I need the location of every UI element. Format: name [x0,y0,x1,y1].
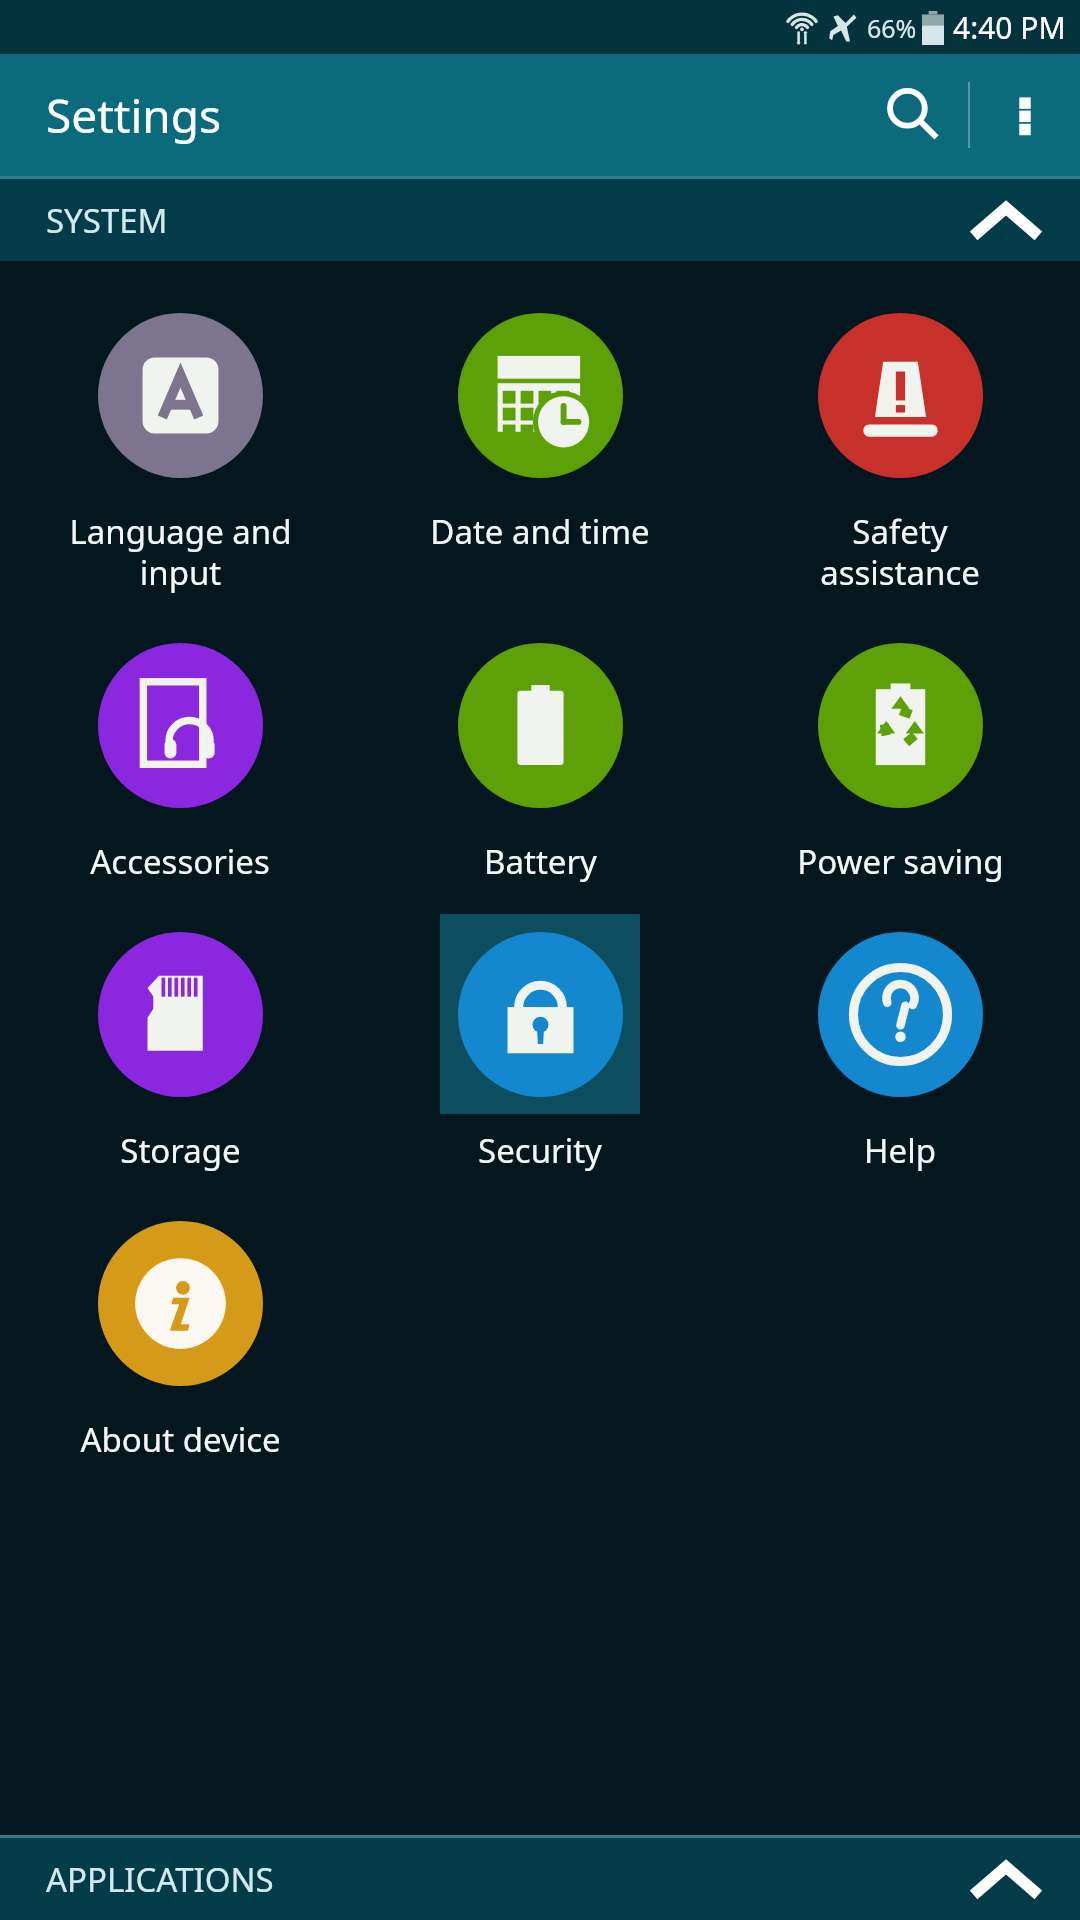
staticText: APPLICATIONS [46,1857,274,1902]
staticText: Date and time [430,509,650,554]
staticText: Help [864,1128,936,1173]
staticText: Storage [120,1128,241,1173]
staticText: Safety assistance [820,509,980,595]
staticText: About device [80,1417,281,1462]
staticText: SYSTEM [46,198,168,243]
staticText: Power saving [797,839,1004,884]
button[interactable]: Language and input [0,291,360,599]
button[interactable]: APPLICATIONS [0,1838,1080,1920]
staticText: Battery [484,839,597,884]
button[interactable]: Search [858,60,968,170]
button[interactable]: Power saving [720,621,1080,888]
button[interactable]: Storage [0,910,360,1177]
staticText: Language and input [69,509,292,595]
staticText: 4:40 PM [953,7,1066,48]
staticText: Accessories [90,839,270,884]
button[interactable]: About device [0,1199,360,1466]
button[interactable]: More options [970,60,1080,170]
staticText: Security [478,1128,602,1173]
staticText: 66% [867,11,917,45]
staticText: Settings [46,84,222,147]
button[interactable]: Security [360,910,720,1177]
button[interactable]: Battery [360,621,720,888]
button[interactable]: Safety assistance [720,291,1080,599]
button[interactable]: Date and time [360,291,720,558]
button[interactable]: Help [720,910,1080,1177]
button[interactable]: Accessories [0,621,360,888]
button[interactable]: SYSTEM [0,179,1080,261]
